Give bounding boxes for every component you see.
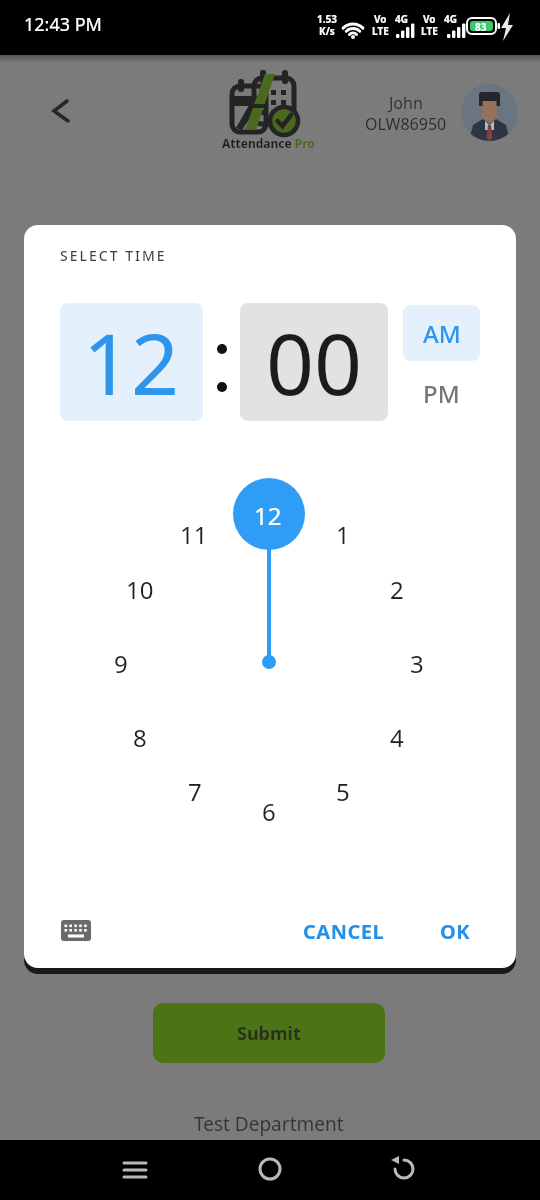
button[interactable]: 00	[240, 303, 388, 421]
staticText: 2	[390, 573, 404, 603]
button[interactable]: AM	[403, 305, 480, 361]
button[interactable]	[54, 908, 98, 952]
staticText: LTE	[372, 24, 389, 36]
staticText: 5	[336, 775, 350, 805]
button[interactable]	[461, 84, 518, 141]
staticText: PM	[423, 377, 460, 410]
staticText: 10	[126, 573, 154, 603]
staticText: 4G	[444, 12, 457, 24]
staticText: 8	[133, 721, 147, 751]
button[interactable]: 8	[118, 721, 162, 751]
button[interactable]: 11	[172, 518, 216, 548]
staticText: CANCEL	[303, 918, 385, 945]
button[interactable]: 10	[118, 573, 162, 603]
button[interactable]: Submit	[153, 1003, 385, 1063]
staticText: 6	[262, 795, 276, 825]
staticText: OLW86950	[365, 113, 447, 135]
staticText: 3	[410, 647, 424, 677]
button[interactable]: 5	[321, 775, 365, 805]
staticText: 4G	[395, 12, 408, 24]
staticText: 7	[188, 775, 202, 805]
staticText: 12:43 PM	[24, 12, 102, 37]
staticText: LTE	[421, 24, 438, 36]
staticText: Attendance Pro	[222, 135, 315, 151]
staticText: Submit	[237, 1021, 301, 1046]
staticText: 12	[83, 305, 180, 419]
staticText: 9	[114, 647, 128, 677]
button[interactable]: 7	[173, 775, 217, 805]
button[interactable]: CANCEL	[279, 913, 409, 949]
button[interactable]: 2	[375, 573, 419, 603]
staticText: K/s	[319, 24, 335, 36]
staticText: Vo	[423, 12, 436, 24]
button[interactable]: 4	[375, 721, 419, 751]
staticText: 83	[475, 20, 487, 32]
button[interactable]: 9	[99, 647, 143, 677]
button[interactable]	[382, 1148, 426, 1192]
button[interactable]	[248, 1148, 292, 1192]
button[interactable]: 12	[246, 499, 290, 529]
staticText: 1	[336, 518, 350, 548]
staticText: Test Department	[194, 1111, 344, 1137]
button[interactable]	[38, 88, 82, 132]
staticText: AM	[423, 317, 461, 350]
button[interactable]: 1	[321, 518, 365, 548]
button[interactable]	[113, 1148, 157, 1192]
staticText: Vo	[374, 12, 387, 24]
button[interactable]: OK	[420, 913, 490, 949]
staticText: John	[389, 92, 423, 114]
button[interactable]: 3	[395, 647, 439, 677]
staticText: SELECT TIME	[60, 246, 167, 265]
staticText: 1.53	[317, 12, 337, 24]
button[interactable]: 6	[247, 795, 291, 825]
staticText: 00	[266, 305, 363, 419]
button[interactable]: PM	[403, 365, 480, 421]
staticText: 4	[390, 721, 404, 751]
staticText: OK	[440, 918, 471, 945]
staticText: 12	[254, 499, 282, 529]
staticText: 11	[180, 518, 208, 548]
button[interactable]: 12	[60, 303, 203, 421]
